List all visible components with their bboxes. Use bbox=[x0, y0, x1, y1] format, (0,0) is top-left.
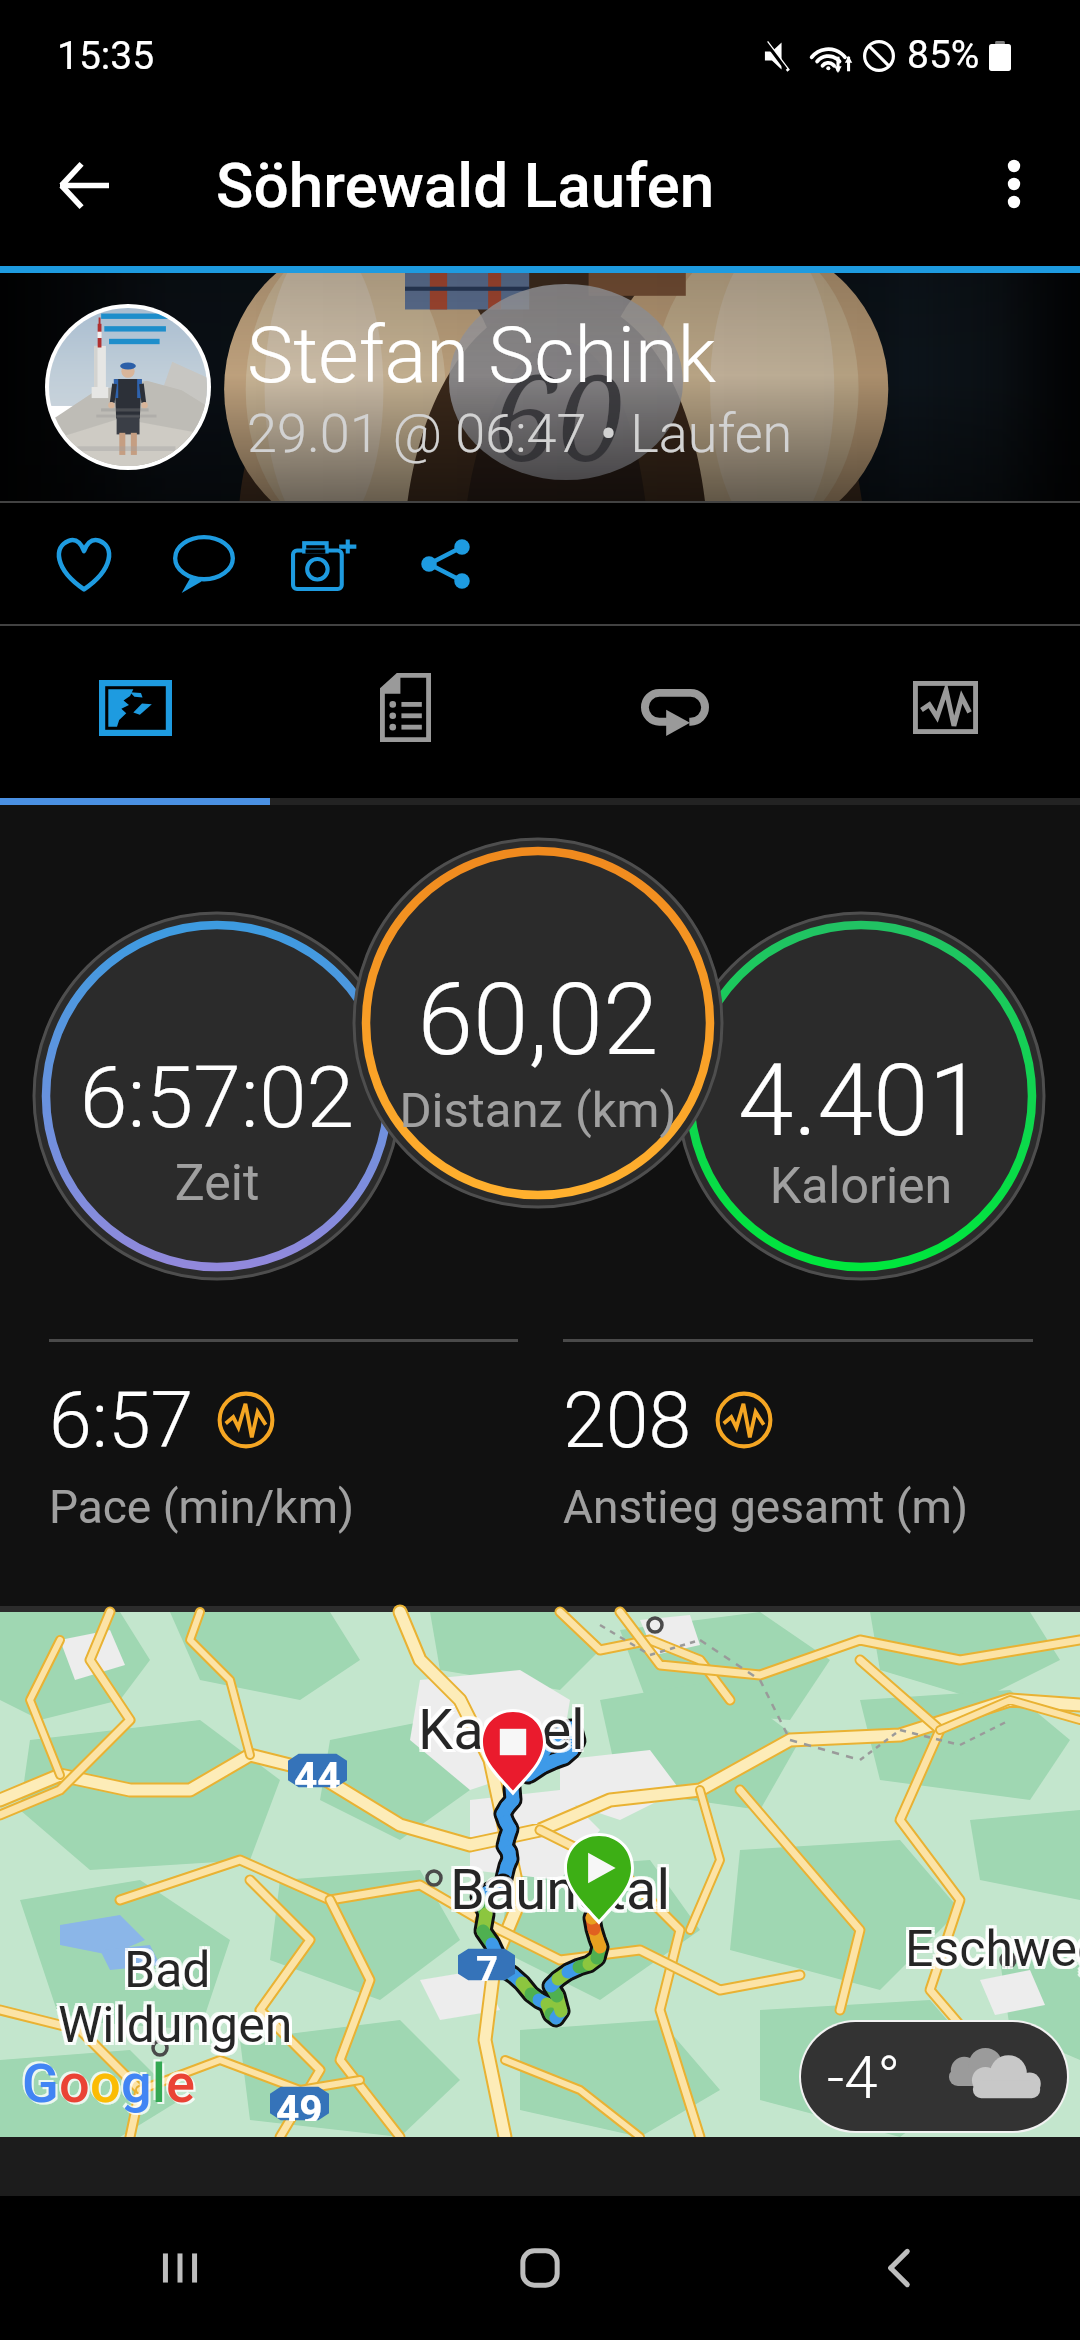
staticText: -4° bbox=[827, 2042, 901, 2112]
staticText: Stefan Schink bbox=[247, 310, 717, 401]
staticText: Söhrewald Laufen bbox=[216, 149, 715, 222]
staticText: o bbox=[90, 2052, 121, 2115]
staticText: g bbox=[119, 2050, 150, 2113]
staticText: 60 bbox=[492, 335, 624, 496]
staticText: 29.01 @ 06:47 • Laufen bbox=[247, 402, 793, 465]
staticText: Bad bbox=[121, 1938, 208, 1997]
staticText: Kassel bbox=[418, 1697, 585, 1763]
staticText: Wildungen bbox=[61, 1999, 296, 2058]
staticText: G bbox=[20, 2050, 57, 2113]
button[interactable]: Back bbox=[720, 2196, 1080, 2340]
staticText: 208 bbox=[563, 1376, 692, 1466]
button[interactable]: Map bbox=[0, 626, 270, 798]
staticText: Bad bbox=[121, 1941, 208, 2000]
staticText: Wildungen bbox=[55, 1996, 290, 2055]
staticText: Eschwege bbox=[902, 1917, 1080, 1976]
staticText: G bbox=[22, 2052, 59, 2115]
staticText: o bbox=[59, 2052, 90, 2115]
staticText: G bbox=[24, 2054, 61, 2117]
button[interactable]: Comment bbox=[152, 512, 256, 616]
staticText: Kassel bbox=[415, 1697, 582, 1763]
staticText: Eschwege bbox=[905, 1920, 1080, 1979]
staticText: Wildungen bbox=[61, 1993, 296, 2052]
staticText: Eschwege bbox=[902, 1923, 1080, 1982]
staticText: e bbox=[166, 2052, 195, 2115]
staticText: Wildungen bbox=[58, 1996, 293, 2055]
staticText: Distanz (km) bbox=[318, 1082, 758, 1139]
button[interactable]: Share bbox=[394, 512, 498, 616]
staticText: 15:35 bbox=[57, 33, 155, 79]
button[interactable]: Back bbox=[29, 130, 139, 240]
staticText: Kassel bbox=[418, 1694, 585, 1760]
staticText: Bad bbox=[124, 1944, 211, 2003]
staticText: l bbox=[152, 2052, 166, 2115]
staticText: Eschwege bbox=[908, 1917, 1080, 1976]
staticText: Baunatal bbox=[450, 1854, 671, 1920]
staticText: Bad bbox=[124, 1941, 211, 2000]
staticText: Eschwege bbox=[902, 1920, 1080, 1979]
staticText: Zeit bbox=[0, 1154, 437, 1213]
button[interactable]: Laps bbox=[540, 626, 810, 798]
staticText: 4.401 bbox=[641, 1042, 1080, 1159]
staticText: Bad bbox=[121, 1944, 208, 2003]
staticText: Kassel bbox=[421, 1700, 588, 1766]
button[interactable]: Graphs bbox=[810, 626, 1080, 798]
staticText: Baunatal bbox=[447, 1854, 668, 1920]
staticText: e bbox=[168, 2054, 197, 2117]
button[interactable]: Add photo bbox=[272, 512, 376, 616]
staticText: Eschwege bbox=[905, 1923, 1080, 1982]
staticText: l bbox=[150, 2050, 164, 2113]
staticText: Eschwege bbox=[908, 1923, 1080, 1982]
staticText: Baunatal bbox=[453, 1854, 674, 1920]
staticText: 49 bbox=[276, 2086, 323, 2121]
staticText: Baunatal bbox=[447, 1860, 668, 1926]
button[interactable]: Home bbox=[360, 2196, 720, 2340]
staticText: Wildungen bbox=[58, 1999, 293, 2058]
staticText: o bbox=[92, 2054, 123, 2117]
staticText: g bbox=[121, 2052, 152, 2115]
staticText: Wildungen bbox=[58, 1993, 293, 2052]
staticText: Kassel bbox=[421, 1697, 588, 1763]
staticText: Kalorien bbox=[641, 1157, 1080, 1216]
staticText: Eschwege bbox=[908, 1920, 1080, 1979]
staticText: Bad bbox=[127, 1944, 214, 2003]
staticText: g bbox=[123, 2054, 154, 2117]
staticText: Bad bbox=[124, 1938, 211, 1997]
staticText: Baunatal bbox=[450, 1860, 671, 1926]
staticText: Baunatal bbox=[453, 1860, 674, 1926]
staticText: o bbox=[88, 2050, 119, 2113]
staticText: 6:57:02 bbox=[0, 1047, 437, 1148]
button[interactable]: Like bbox=[32, 512, 136, 616]
staticText: Eschwege bbox=[905, 1917, 1080, 1976]
staticText: Kassel bbox=[421, 1694, 588, 1760]
staticText: Wildungen bbox=[55, 1993, 290, 2052]
button[interactable]: More options bbox=[959, 129, 1069, 239]
button[interactable]: Recents bbox=[0, 2196, 360, 2340]
staticText: Pace (min/km) bbox=[49, 1480, 354, 1534]
staticText: e bbox=[164, 2050, 193, 2113]
staticText: Kassel bbox=[418, 1700, 585, 1766]
staticText: Baunatal bbox=[450, 1857, 671, 1923]
staticText: Kassel bbox=[415, 1694, 582, 1760]
staticText: 85% bbox=[907, 32, 980, 78]
staticText: o bbox=[61, 2054, 92, 2117]
staticText: Baunatal bbox=[447, 1857, 668, 1923]
staticText: 60,02 bbox=[318, 961, 758, 1078]
staticText: Baunatal bbox=[453, 1857, 674, 1923]
staticText: 44 bbox=[294, 1753, 341, 1788]
staticText: Wildungen bbox=[55, 1999, 290, 2058]
button[interactable]: -4° bbox=[801, 2022, 1067, 2131]
staticText: Bad bbox=[127, 1941, 214, 2000]
staticText: 7 bbox=[476, 1948, 498, 1981]
staticText: 6:57 bbox=[49, 1376, 194, 1466]
staticText: Wildungen bbox=[61, 1996, 296, 2055]
staticText: Bad bbox=[127, 1938, 214, 1997]
staticText: Anstieg gesamt (m) bbox=[563, 1480, 968, 1534]
staticText: o bbox=[57, 2050, 88, 2113]
staticText: l bbox=[154, 2054, 168, 2117]
button[interactable]: Details bbox=[270, 626, 540, 798]
staticText: Kassel bbox=[415, 1700, 582, 1766]
